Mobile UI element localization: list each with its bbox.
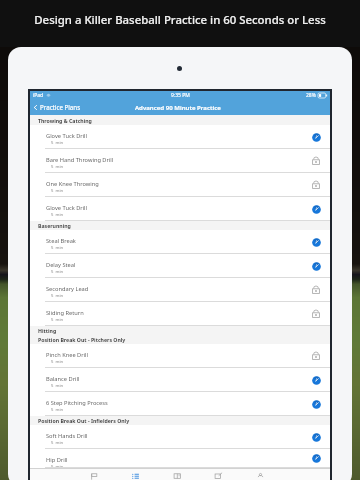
staticText: Design a Killer Baseball Practice in 60 … [0, 12, 360, 28]
button[interactable]: Drills [157, 469, 197, 480]
button[interactable]: Practice Plans [30, 103, 85, 111]
staticText: iPad [33, 92, 44, 99]
staticText: Glove Tuck Drill [46, 132, 88, 140]
button[interactable]: Bare Hand Throwing Drill [30, 149, 330, 173]
button[interactable]: Plans [115, 469, 155, 480]
staticText: Pinch Knee Drill [46, 351, 88, 359]
staticText: 5 min [51, 440, 64, 446]
staticText: 5 min [51, 269, 64, 275]
staticText: 5 min [51, 407, 64, 413]
staticText: 6 Step Pitching Process [46, 399, 108, 407]
button[interactable]: Notes [198, 469, 238, 480]
button[interactable]: Sliding Return [30, 302, 330, 326]
staticText: 28% [306, 92, 316, 99]
staticText: 5 min [51, 464, 64, 470]
button[interactable]: Hip Drill [30, 449, 330, 468]
staticText: Position Break Out - Pitchers Only [38, 336, 126, 343]
button[interactable]: Practices [74, 469, 114, 480]
staticText: 5 min [51, 383, 64, 389]
staticText: 5 min [51, 212, 64, 218]
button[interactable]: One Knee Throwing [30, 173, 330, 197]
staticText: 5 min [51, 245, 64, 251]
staticText: One Knee Throwing [46, 180, 99, 188]
staticText: Advanced 90 Minute Practice [135, 103, 221, 111]
staticText: Hip Drill [46, 456, 68, 464]
staticText: Delay Steal [46, 261, 76, 269]
staticText: 5 min [51, 188, 64, 194]
staticText: 5 min [51, 140, 64, 146]
staticText: Sliding Return [46, 309, 84, 317]
button[interactable]: 6 Step Pitching Process [30, 392, 330, 416]
button[interactable]: Glove Tuck Drill [30, 125, 330, 149]
button[interactable]: Steal Break [30, 230, 330, 254]
staticText: 5 min [51, 164, 64, 170]
staticText: Secondary Lead [46, 285, 89, 293]
staticText: Bare Hand Throwing Drill [46, 156, 114, 164]
staticText: 5 min [51, 293, 64, 299]
button[interactable]: Profile [240, 469, 280, 480]
staticText: Position Break Out - Infielders Only [38, 417, 130, 424]
staticText: Throwing & Catching [38, 117, 92, 124]
staticText: 9:35 PM [171, 92, 190, 99]
button[interactable]: Secondary Lead [30, 278, 330, 302]
staticText: Soft Hands Drill [46, 432, 88, 440]
staticText: Balance Drill [46, 375, 80, 383]
staticText: Glove Tuck Drill [46, 204, 88, 212]
staticText: Hitting [38, 327, 57, 334]
button[interactable]: Balance Drill [30, 368, 330, 392]
button[interactable]: Soft Hands Drill [30, 425, 330, 449]
button[interactable]: Delay Steal [30, 254, 330, 278]
staticText: Baserunning [38, 222, 71, 229]
staticText: Practice Plans [40, 103, 81, 111]
staticText: Steal Break [46, 237, 76, 245]
staticText: 5 min [51, 317, 64, 323]
button[interactable]: Pinch Knee Drill [30, 344, 330, 368]
button[interactable]: Glove Tuck Drill [30, 197, 330, 221]
staticText: 5 min [51, 359, 64, 365]
